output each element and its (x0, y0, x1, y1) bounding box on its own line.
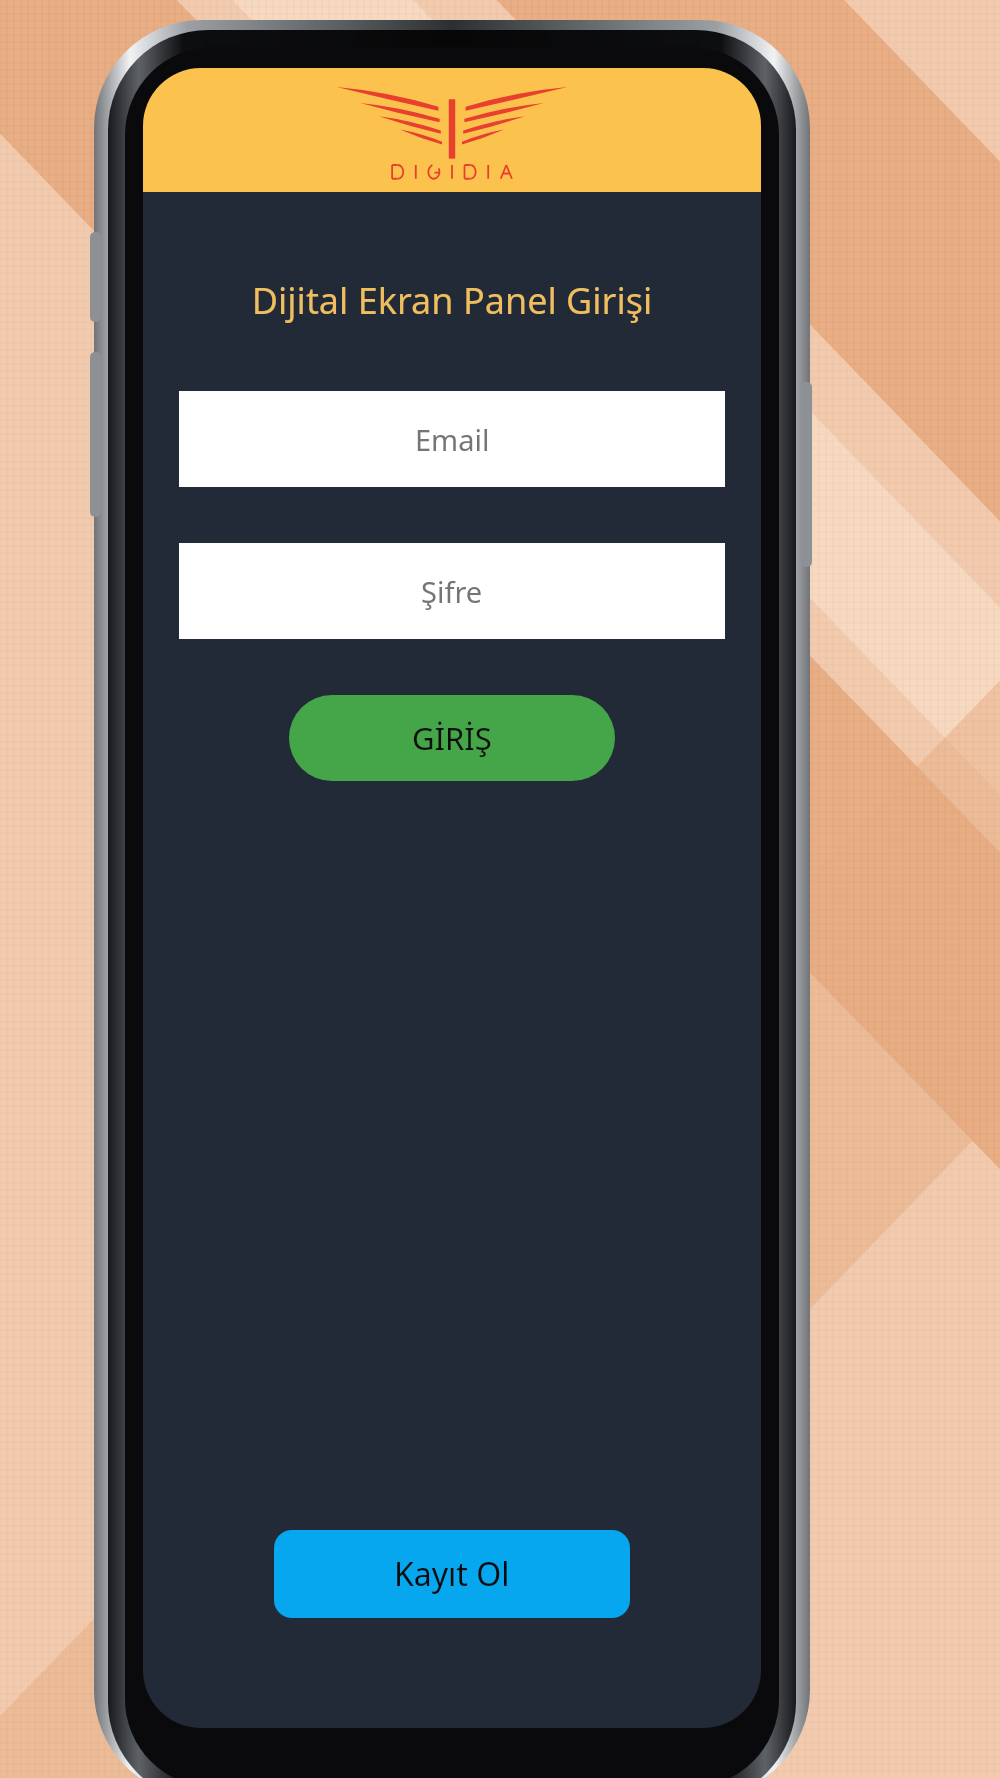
staticText: Dijital Ekran Panel Girişi (143, 276, 761, 325)
other: Digidia logo (328, 77, 576, 183)
staticText: Email (415, 420, 490, 459)
button[interactable]: Kayıt Ol (274, 1530, 630, 1618)
button[interactable]: GİRİŞ (289, 695, 615, 781)
staticText: Şifre (421, 572, 483, 611)
button[interactable]: Email (179, 391, 725, 487)
staticText: GİRİŞ (412, 717, 492, 759)
button[interactable]: Şifre (179, 543, 725, 639)
staticText: Kayıt Ol (394, 1552, 510, 1596)
